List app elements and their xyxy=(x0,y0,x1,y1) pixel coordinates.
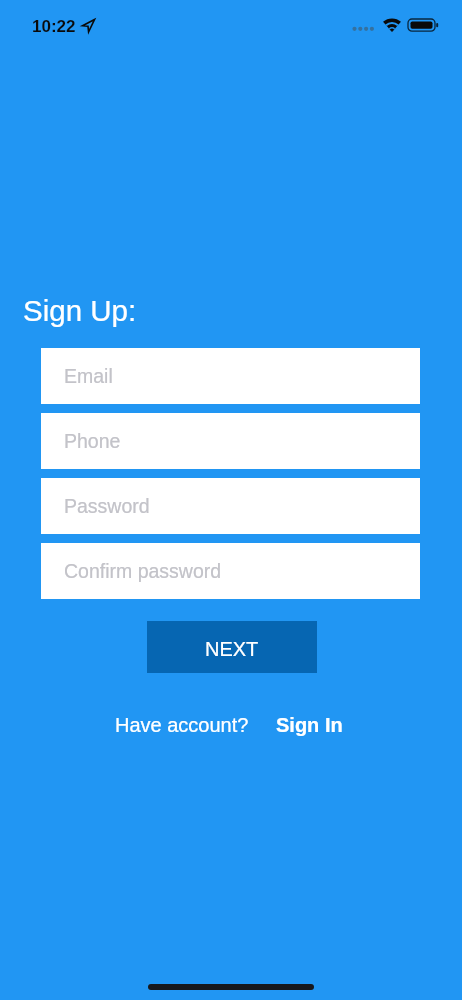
staticText: Password xyxy=(64,495,150,517)
staticText: NEXT xyxy=(205,638,259,660)
staticText: Have account? xyxy=(115,714,249,736)
button[interactable]: NEXT xyxy=(147,621,317,673)
staticText: Phone xyxy=(64,430,121,452)
staticText: 10:22 xyxy=(32,17,76,36)
staticText: Sign In xyxy=(276,714,343,736)
button[interactable]: Confirm password xyxy=(41,543,420,599)
button[interactable]: Email xyxy=(41,348,420,404)
button[interactable]: Password xyxy=(41,478,420,534)
staticText: Sign Up: xyxy=(23,294,137,327)
button[interactable]: Sign In xyxy=(270,708,349,742)
button[interactable]: Phone xyxy=(41,413,420,469)
staticText: Email xyxy=(64,365,113,387)
staticText: Confirm password xyxy=(64,560,222,582)
